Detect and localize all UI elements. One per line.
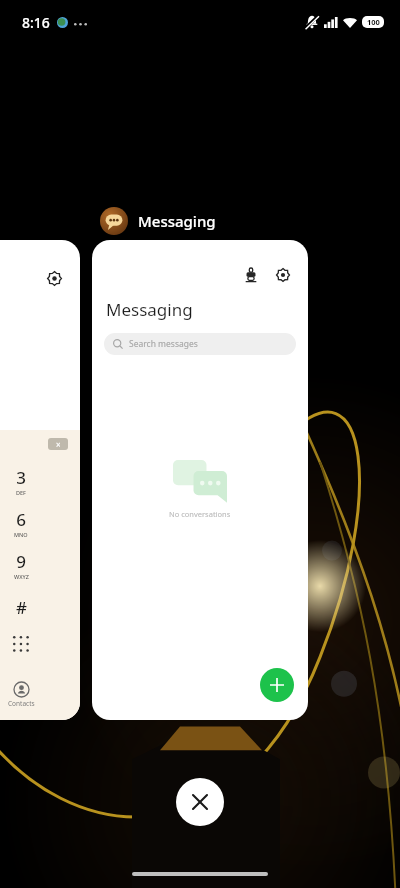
button[interactable]: Settings — [44, 268, 64, 288]
button[interactable]: Messaging — [100, 206, 216, 236]
staticText: # — [16, 596, 27, 619]
staticText: × — [56, 439, 61, 450]
staticText: 6 — [16, 508, 26, 531]
button[interactable]: Settings — [0, 240, 80, 720]
staticText: Messaging — [106, 298, 193, 321]
staticText: 100 — [367, 17, 380, 27]
staticText: MNO — [14, 531, 28, 538]
button[interactable]: New conversation — [260, 668, 294, 702]
button[interactable]: Contacts — [8, 682, 35, 708]
button[interactable]: Clean up — [240, 264, 262, 286]
staticText: DEF — [16, 489, 26, 496]
button[interactable]: Search messages — [104, 333, 296, 355]
staticText: 8:16 — [22, 13, 50, 32]
button[interactable]: Keypad — [13, 636, 29, 652]
staticText: 3 — [16, 466, 26, 489]
staticText: Contacts — [8, 699, 35, 708]
button[interactable]: 6 — [0, 502, 80, 544]
button[interactable]: Backspace — [48, 438, 68, 450]
button[interactable]: 9 — [0, 544, 80, 586]
staticText: Search messages — [129, 338, 198, 350]
staticText: 9 — [16, 550, 26, 573]
staticText: No conversations — [169, 509, 231, 519]
button[interactable]: # — [0, 586, 80, 628]
staticText: Messaging — [138, 211, 216, 231]
staticText: WXYZ — [14, 573, 29, 580]
button[interactable]: 3 — [0, 460, 80, 502]
button[interactable]: Clear all — [176, 778, 224, 826]
button[interactable]: Clean up — [92, 240, 308, 720]
button[interactable]: Settings — [272, 264, 294, 286]
